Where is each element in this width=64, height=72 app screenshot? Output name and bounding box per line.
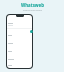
button[interactable] — [7, 63, 32, 68]
button[interactable] — [8, 23, 32, 26]
button[interactable] — [7, 47, 32, 55]
staticText: scan & chat online — [23, 9, 42, 12]
button[interactable] — [7, 55, 32, 63]
button[interactable] — [7, 39, 32, 47]
button[interactable] — [7, 31, 32, 39]
staticText: Whatsweb — [21, 2, 44, 8]
button[interactable]: Connect — [30, 30, 33, 33]
